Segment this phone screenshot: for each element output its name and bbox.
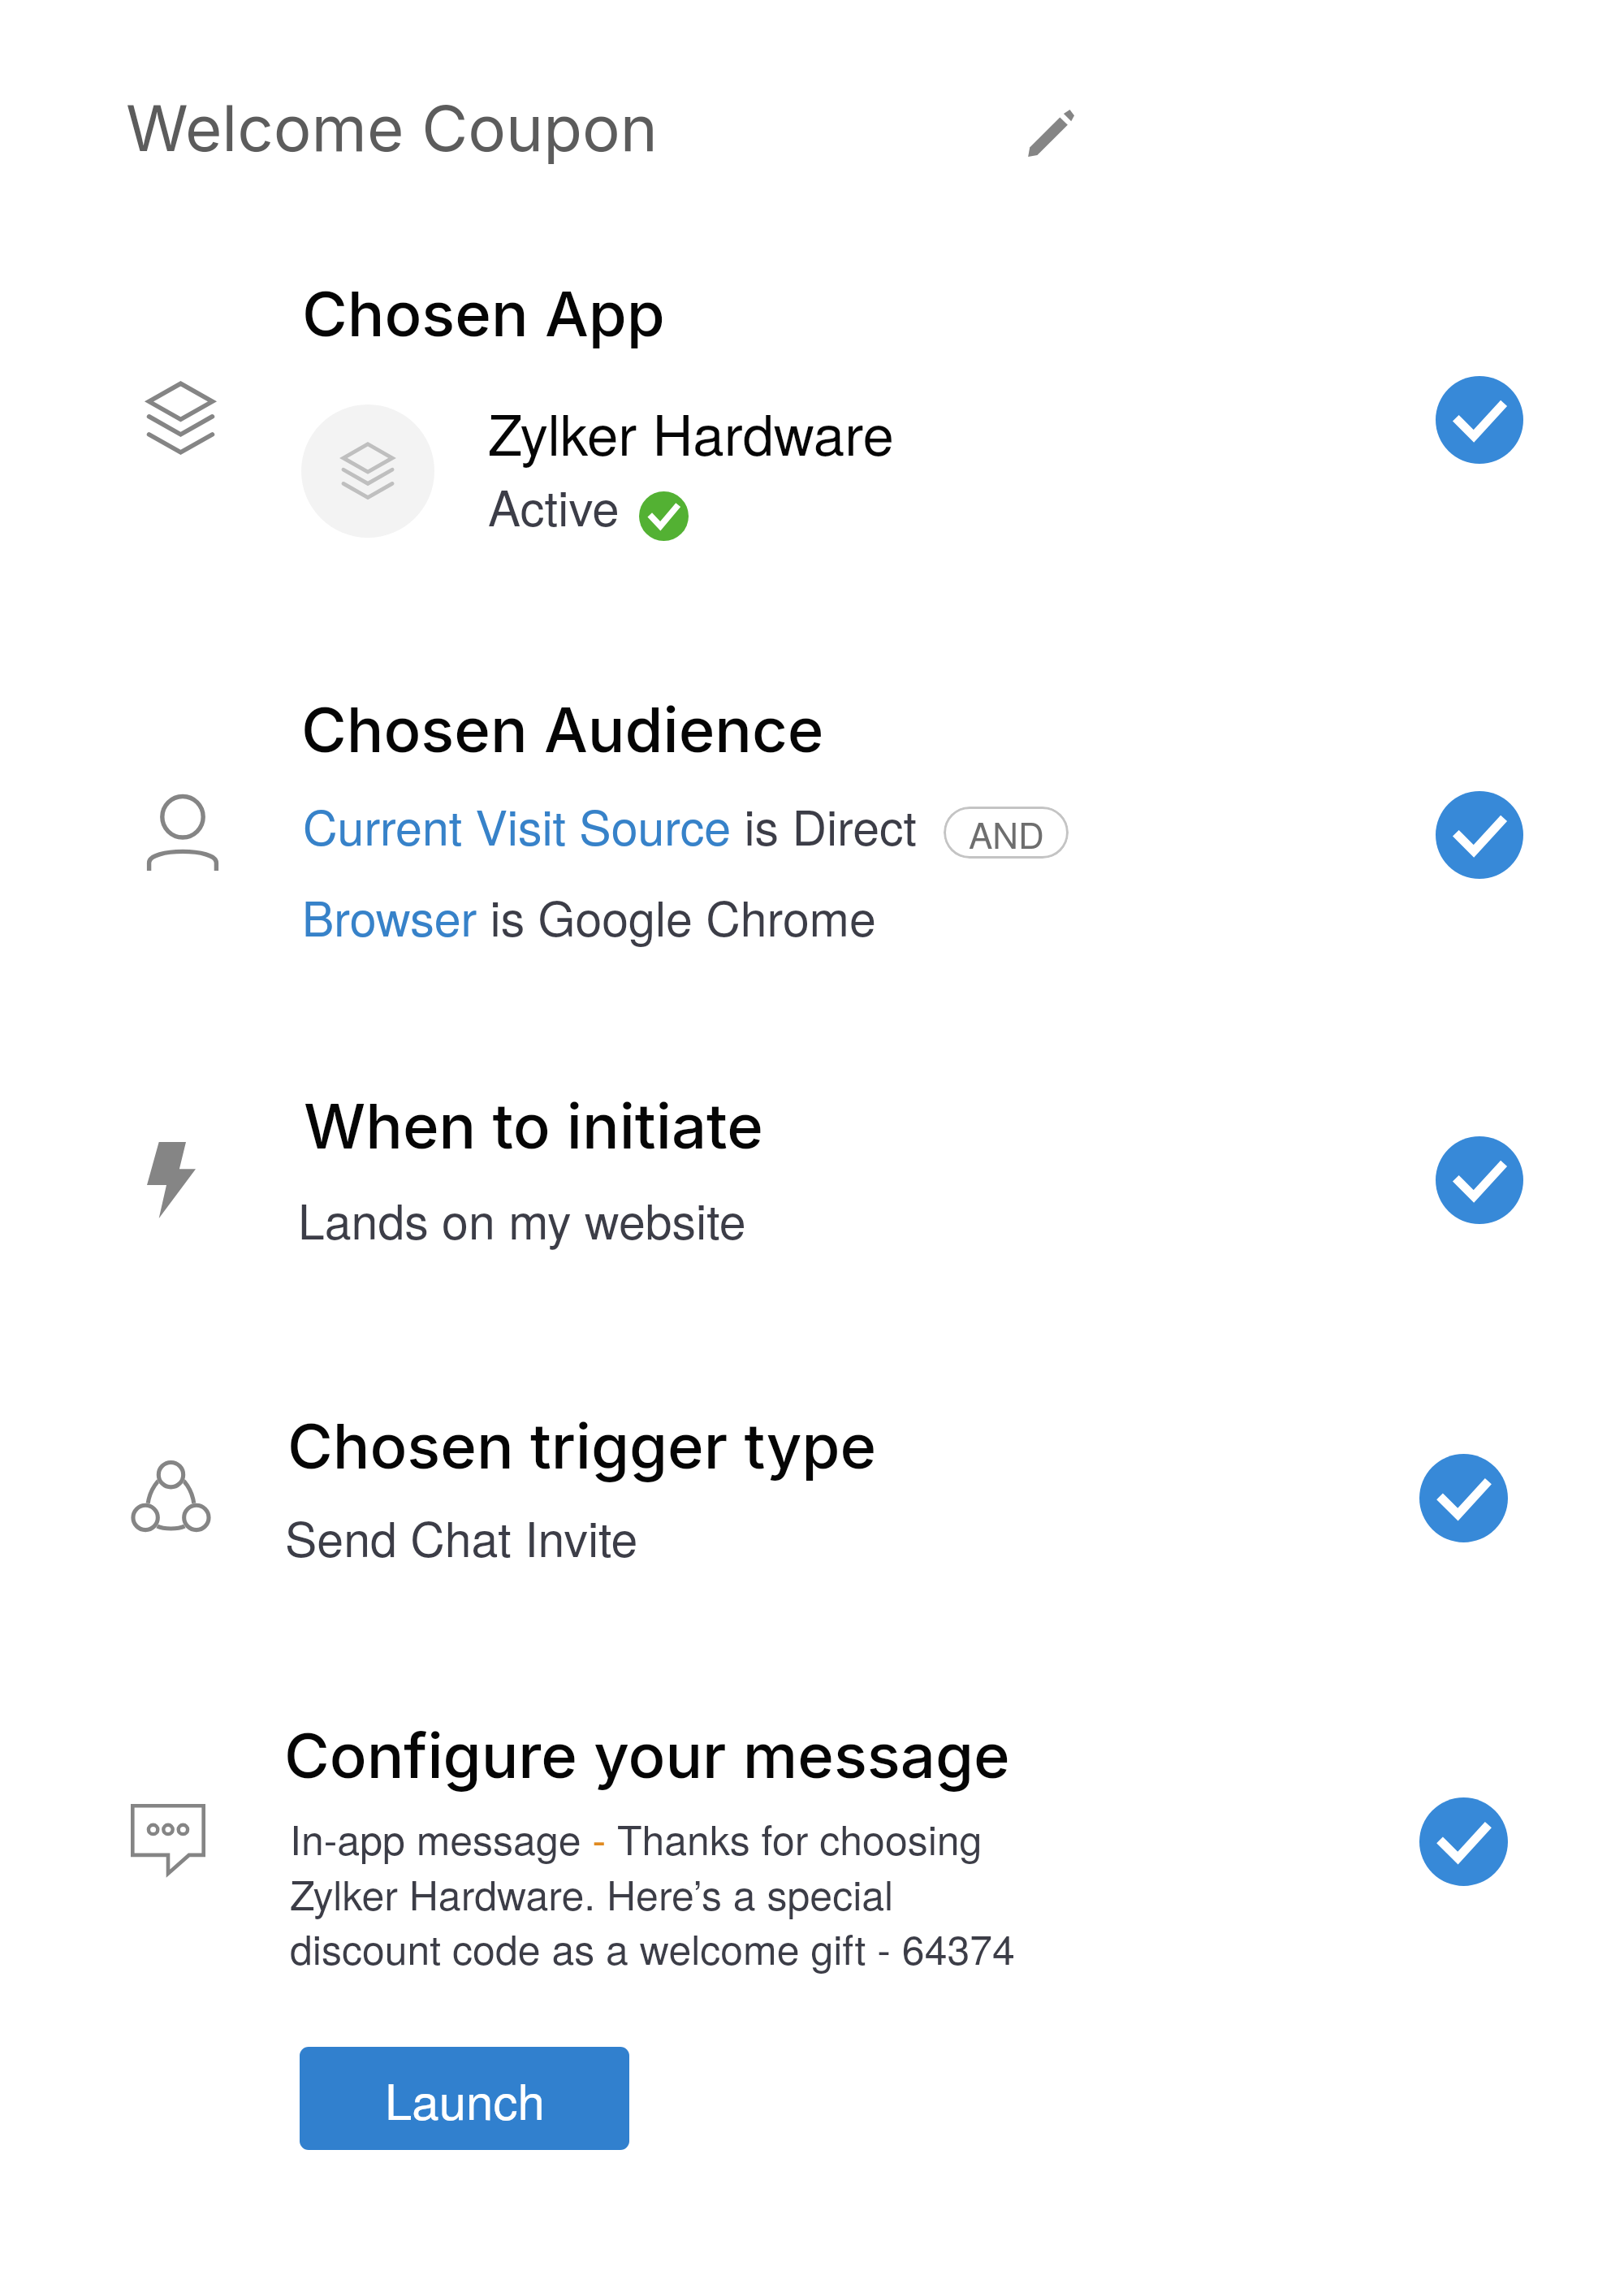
button[interactable]: Configure your message — [122, 1706, 1502, 1982]
staticText: Configure your message — [284, 1718, 1010, 1793]
staticText: Launch — [385, 2064, 545, 2134]
staticText: Browser is Google Chrome — [302, 881, 876, 950]
staticText: In-app message - Thanks for choosing Zyl… — [290, 1809, 1021, 1976]
button[interactable]: Edit campaign name — [1017, 99, 1085, 167]
staticText: Chosen Audience — [301, 692, 824, 767]
button[interactable]: Chosen App: Zylker Hardware, Active — [122, 260, 1502, 528]
staticText: AND — [969, 807, 1044, 859]
staticText: Chosen App — [302, 276, 665, 351]
staticText: Welcome Coupon — [126, 89, 658, 166]
button[interactable]: Chosen Audience: Current Visit Source is… — [122, 678, 1502, 938]
button[interactable]: Step completed — [1419, 1454, 1508, 1542]
staticText: Active — [488, 470, 620, 540]
button[interactable]: Chosen trigger type: Send Chat Invite — [122, 1397, 1502, 1576]
button[interactable]: Step completed — [1419, 1797, 1508, 1886]
staticText: Current Visit Source is Direct — [303, 790, 917, 859]
button[interactable]: Step completed — [1436, 791, 1523, 879]
staticText: When to initiate — [304, 1088, 763, 1163]
staticText: Chosen trigger type — [287, 1408, 877, 1483]
button[interactable]: Launch — [300, 2047, 629, 2150]
button[interactable]: Welcome Coupon — [116, 81, 667, 174]
button[interactable]: When to initiate: Lands on my website — [122, 1076, 1502, 1263]
staticText: Send Chat Invite — [285, 1502, 638, 1570]
button[interactable]: AND — [944, 807, 1069, 859]
button[interactable]: Step completed — [1436, 376, 1523, 464]
button[interactable]: Step completed — [1436, 1136, 1523, 1224]
staticText: Zylker Hardware — [488, 391, 894, 472]
staticText: Lands on my website — [298, 1184, 746, 1252]
